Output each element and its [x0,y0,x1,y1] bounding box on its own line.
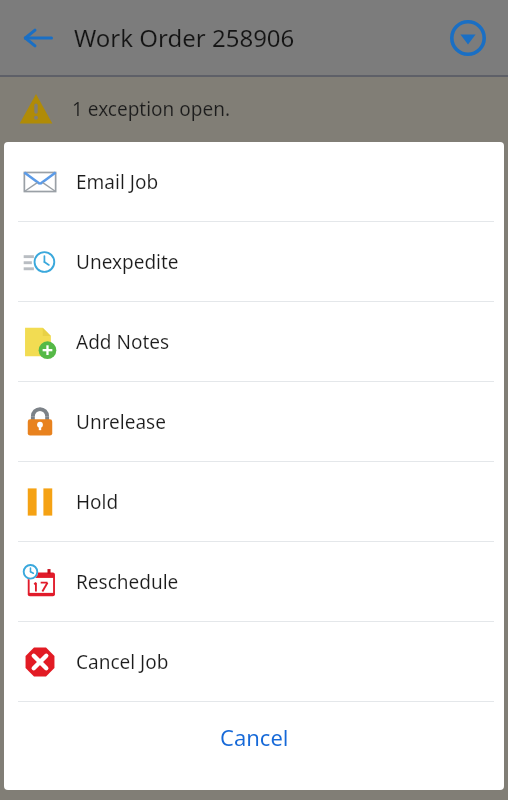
staticText: Unexpedite [76,249,179,275]
button[interactable]: Expand [446,16,490,60]
button[interactable]: Add Notes [4,302,504,381]
staticText: Reschedule [76,569,179,595]
button[interactable]: Back [18,18,58,58]
button[interactable]: Cancel Job [4,622,504,701]
staticText: Hold [76,489,119,515]
button[interactable]: Hold [4,462,504,541]
button[interactable]: Reschedule [4,542,504,621]
staticText: 1 exception open. [72,96,231,122]
staticText: Work Order 258906 [74,21,295,54]
staticText: Email Job [76,169,159,195]
staticText: Cancel [220,722,289,752]
button[interactable]: Email Job [4,142,504,221]
staticText: Cancel Job [76,649,169,675]
button[interactable]: Unexpedite [4,222,504,301]
staticText: Unrelease [76,409,166,435]
button[interactable]: Cancel [4,702,504,790]
button[interactable]: Unrelease [4,382,504,461]
staticText: Add Notes [76,329,170,355]
